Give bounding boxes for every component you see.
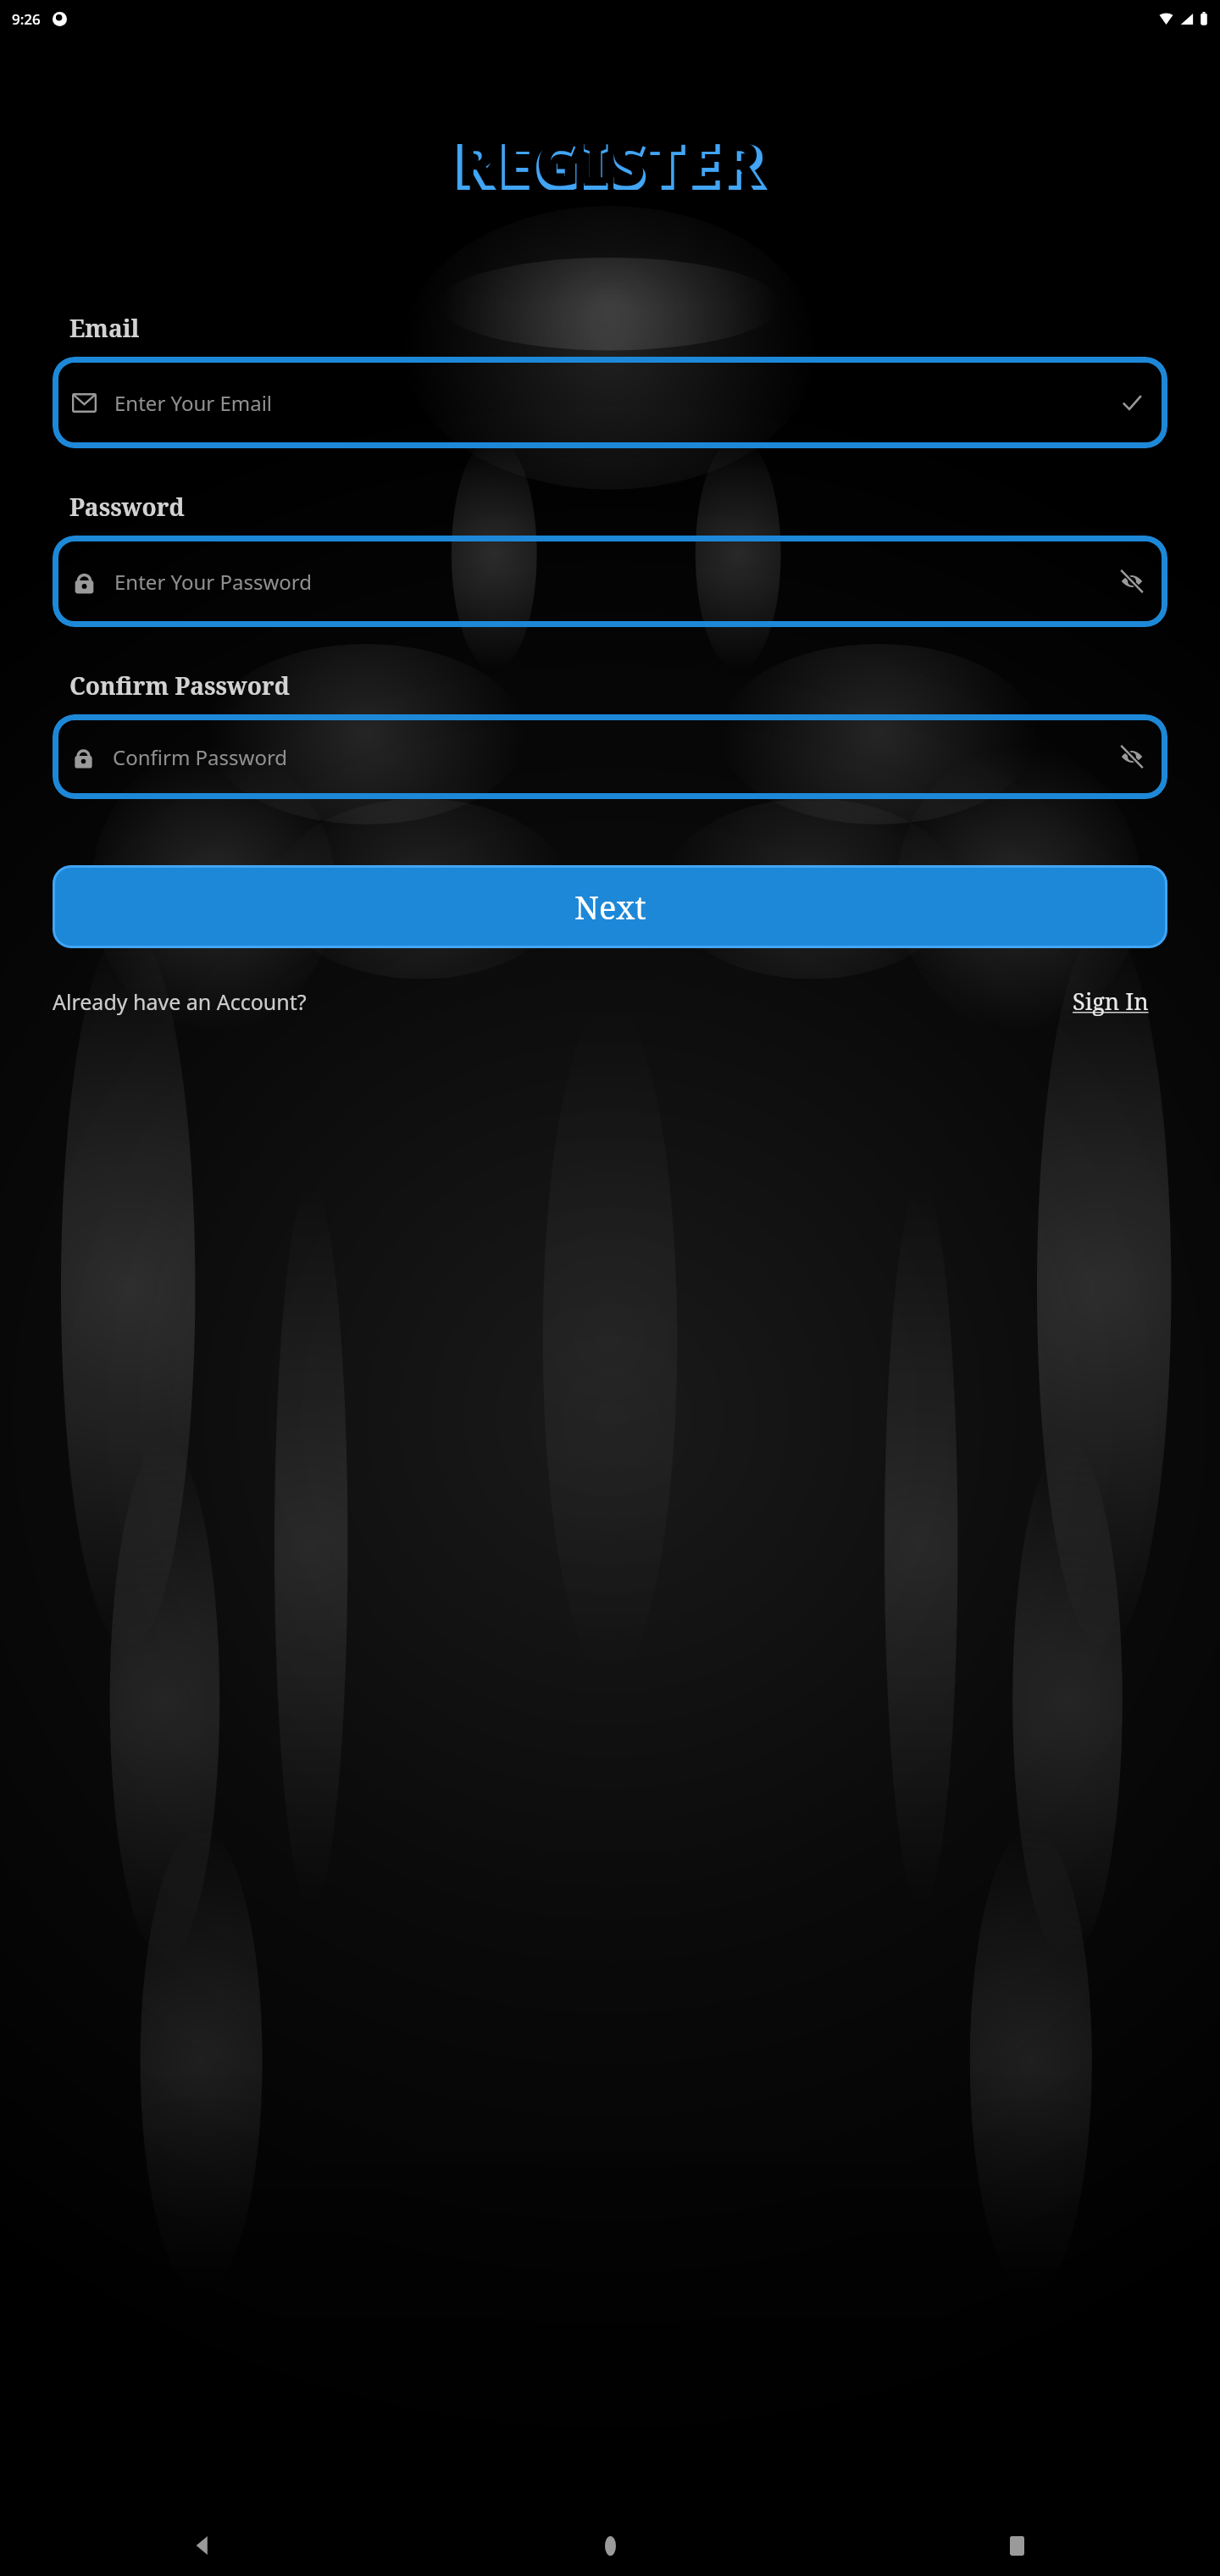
staticText: Enter Your Password [114,568,312,596]
staticText: Next [574,885,646,929]
staticText: 9:26 [12,9,41,29]
button[interactable]: Show password [1115,740,1149,774]
button[interactable]: Show password [1115,564,1149,598]
staticText: Confirm Password [69,669,290,702]
button[interactable]: Next [53,865,1167,948]
staticText: Confirm Password [113,743,288,771]
staticText: Password [69,491,185,523]
staticText: Sign In [1073,985,1149,1017]
other: Password [71,745,96,769]
staticText: REGISTER [452,122,768,190]
staticText: Enter Your Email [114,389,273,417]
button[interactable]: Home [407,2515,813,2576]
button[interactable]: Valid [1115,386,1149,419]
button[interactable]: Back [0,2515,407,2576]
button[interactable]: Recent apps [813,2515,1220,2576]
button[interactable]: Email [53,357,1167,448]
button[interactable]: Sign In [1073,985,1167,1017]
staticText: REGISTER [457,122,764,190]
staticText: Email [69,312,140,344]
other: Password [71,569,97,595]
button[interactable]: Already have an Account? [53,987,307,1016]
other: Email [71,390,97,416]
button[interactable]: Password [53,536,1167,627]
button[interactable]: Password [53,714,1167,799]
